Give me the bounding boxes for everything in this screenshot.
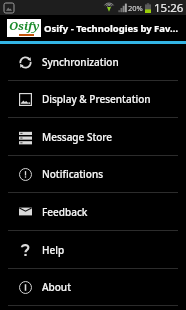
staticText: Synchronization [42,55,119,69]
staticText: Notifications [42,167,104,181]
staticText: 15:26 [154,0,184,15]
button[interactable]: Feedback [0,193,186,231]
staticText: 20% [128,3,143,13]
staticText: Help [42,243,65,257]
staticText: Osify [9,18,40,34]
button[interactable]: Message Store [0,118,186,156]
button[interactable]: Notifications [0,156,186,193]
staticText: Osify - Technologies by Fav… [44,22,179,35]
staticText: About [42,280,71,294]
button[interactable]: Help [0,231,186,269]
button[interactable]: Display & Presentation [0,81,186,118]
staticText: Display & Presentation [42,92,151,106]
button[interactable]: Synchronization [0,44,186,81]
button[interactable]: About [0,269,186,306]
staticText: Feedback [42,205,88,219]
staticText: Message Store [42,130,113,144]
